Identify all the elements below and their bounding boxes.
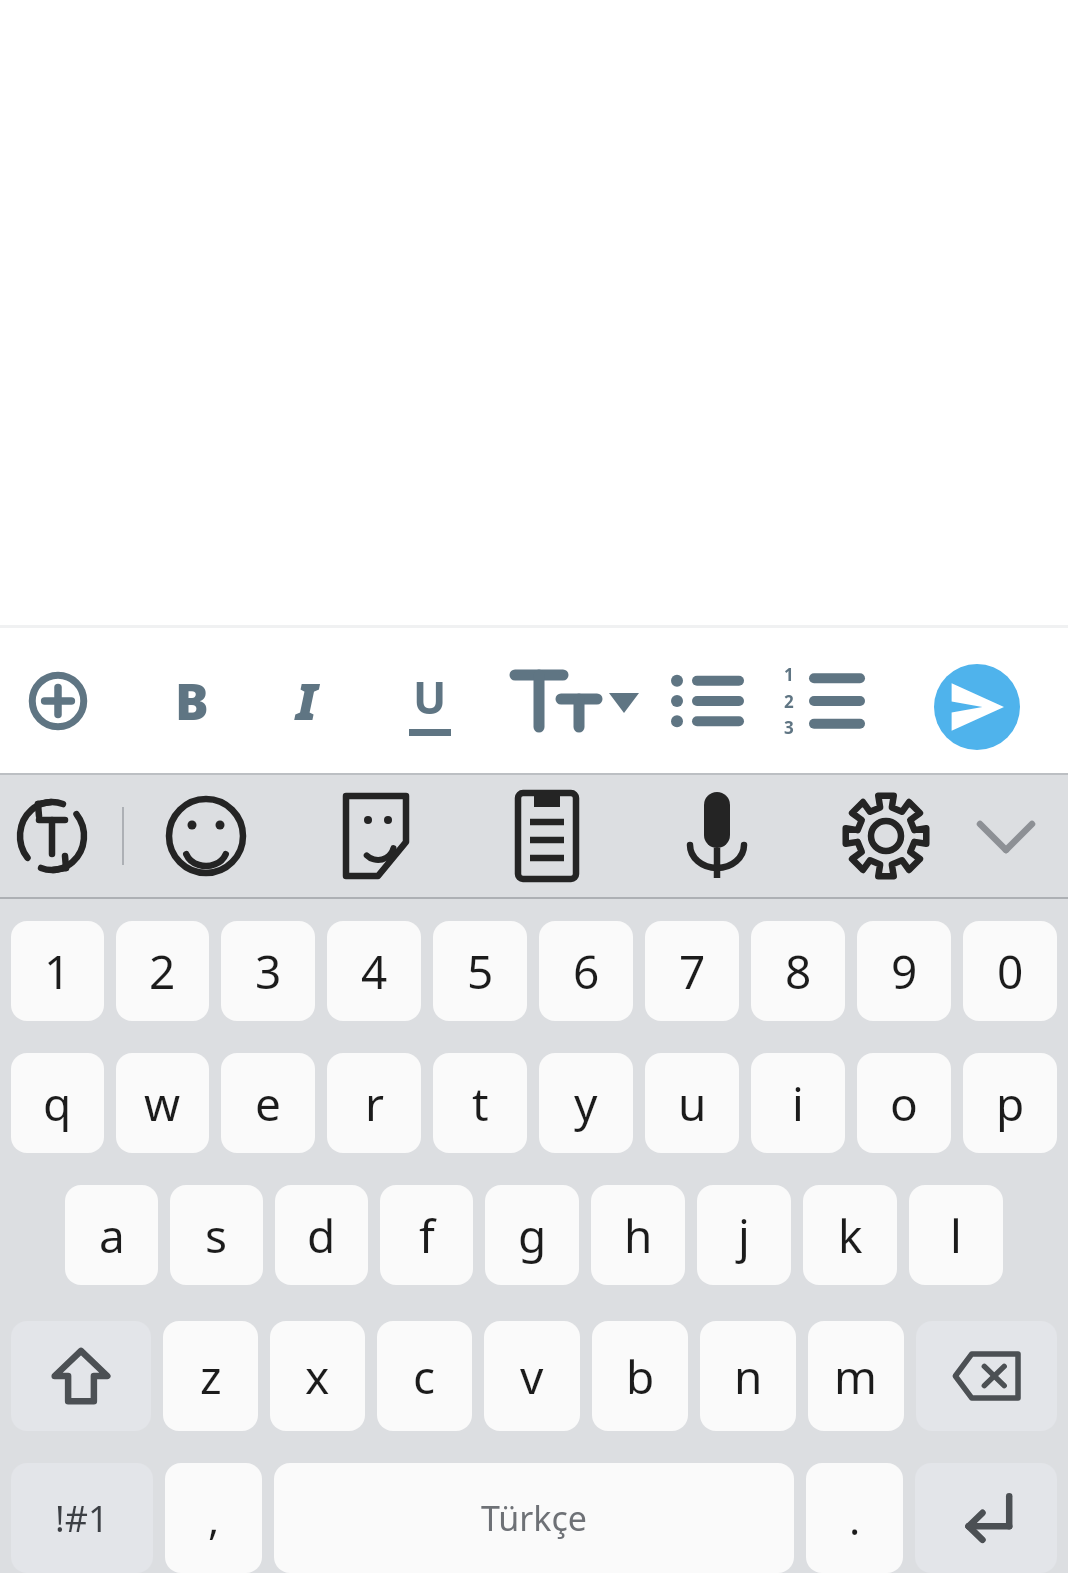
staticText: m [834, 1345, 878, 1408]
button[interactable]: 9 [857, 921, 951, 1021]
staticText: h [624, 1204, 653, 1267]
button[interactable]: Shift [11, 1321, 151, 1431]
button[interactable]: o [857, 1053, 951, 1153]
staticText: 2 [149, 940, 176, 1003]
staticText: a [99, 1204, 125, 1267]
button[interactable]: Stickers [326, 786, 426, 886]
staticText: 5 [467, 940, 494, 1003]
button[interactable]: 6 [539, 921, 633, 1021]
button[interactable]: e [221, 1053, 315, 1153]
button[interactable]: c [377, 1321, 472, 1431]
staticText: k [838, 1204, 863, 1267]
button[interactable]: r [327, 1053, 421, 1153]
staticText: q [43, 1072, 72, 1135]
staticText: r [365, 1072, 384, 1135]
button[interactable]: v [484, 1321, 580, 1431]
staticText: w [144, 1072, 181, 1135]
button[interactable]: l [909, 1185, 1003, 1285]
button[interactable]: s [170, 1185, 263, 1285]
button[interactable]: j [697, 1185, 791, 1285]
button[interactable]: Send [934, 664, 1020, 750]
staticText: 3 [255, 940, 282, 1003]
staticText: 1 [44, 940, 71, 1003]
staticText: 0 [997, 940, 1024, 1003]
button[interactable]: u [645, 1053, 739, 1153]
staticText: d [307, 1204, 336, 1267]
button[interactable]: Backspace [916, 1321, 1057, 1431]
staticText: 4 [361, 940, 388, 1003]
staticText: b [626, 1345, 655, 1408]
staticText: v [520, 1345, 544, 1408]
staticText: j [738, 1204, 750, 1267]
button[interactable]: k [803, 1185, 897, 1285]
button[interactable]: 8 [751, 921, 845, 1021]
button[interactable]: y [539, 1053, 633, 1153]
button[interactable]: h [591, 1185, 685, 1285]
button[interactable]: Space [274, 1463, 794, 1573]
staticText: y [574, 1072, 598, 1135]
button[interactable]: Text style [490, 653, 640, 749]
button[interactable]: p [963, 1053, 1057, 1153]
staticText: U [413, 667, 447, 727]
button[interactable]: f [380, 1185, 473, 1285]
button[interactable]: Clipboard [497, 786, 597, 886]
staticText: t [472, 1072, 489, 1135]
button[interactable]: . [806, 1463, 903, 1573]
button[interactable]: Keyboard settings [836, 786, 936, 886]
staticText: i [792, 1072, 804, 1135]
button[interactable]: m [808, 1321, 904, 1431]
staticText: p [996, 1072, 1025, 1135]
button[interactable]: b [592, 1321, 688, 1431]
button[interactable]: t [433, 1053, 527, 1153]
button[interactable]: 0 [963, 921, 1057, 1021]
button[interactable]: Enter [915, 1463, 1057, 1573]
button[interactable]: q [11, 1053, 104, 1153]
button[interactable]: Underline [382, 653, 478, 749]
button[interactable]: Voice input [667, 786, 767, 886]
button[interactable]: !#1 [11, 1463, 153, 1573]
button[interactable]: Emoji [156, 786, 256, 886]
button[interactable]: a [65, 1185, 158, 1285]
button[interactable]: z [163, 1321, 258, 1431]
button[interactable]: 2 [116, 921, 209, 1021]
button[interactable]: Bold [144, 653, 240, 749]
staticText: f [419, 1204, 435, 1267]
staticText: n [734, 1345, 763, 1408]
button[interactable]: 3 [221, 921, 315, 1021]
staticText: u [678, 1072, 707, 1135]
button[interactable]: Numbered list [774, 653, 870, 749]
button[interactable]: Bulleted list [658, 653, 754, 749]
staticText: I [296, 667, 318, 735]
staticText: x [305, 1345, 330, 1408]
staticText: B [175, 667, 209, 735]
button[interactable]: Add attachment [10, 653, 106, 749]
staticText: 8 [785, 940, 812, 1003]
staticText: 9 [891, 940, 918, 1003]
staticText: s [205, 1204, 228, 1267]
button[interactable]: 7 [645, 921, 739, 1021]
button[interactable]: w [116, 1053, 209, 1153]
button[interactable]: , [165, 1463, 262, 1573]
button[interactable]: 4 [327, 921, 421, 1021]
button[interactable]: Translate [2, 786, 102, 886]
button[interactable]: 1 [11, 921, 104, 1021]
staticText: l [950, 1204, 962, 1267]
button[interactable]: Hide keyboard [956, 786, 1056, 886]
button[interactable]: n [700, 1321, 796, 1431]
staticText: e [255, 1072, 281, 1135]
staticText: , [208, 1490, 220, 1547]
button[interactable]: 5 [433, 921, 527, 1021]
staticText: 6 [573, 940, 600, 1003]
staticText: o [890, 1072, 918, 1135]
staticText: g [518, 1204, 547, 1267]
staticText: 7 [679, 940, 706, 1003]
staticText: !#1 [55, 1494, 109, 1543]
button[interactable]: x [270, 1321, 365, 1431]
staticText: 3 [784, 716, 794, 739]
button[interactable]: i [751, 1053, 845, 1153]
staticText: z [200, 1345, 222, 1408]
button[interactable]: g [485, 1185, 579, 1285]
button[interactable]: d [275, 1185, 368, 1285]
button[interactable]: Italic [259, 653, 355, 749]
staticText: c [413, 1345, 436, 1408]
